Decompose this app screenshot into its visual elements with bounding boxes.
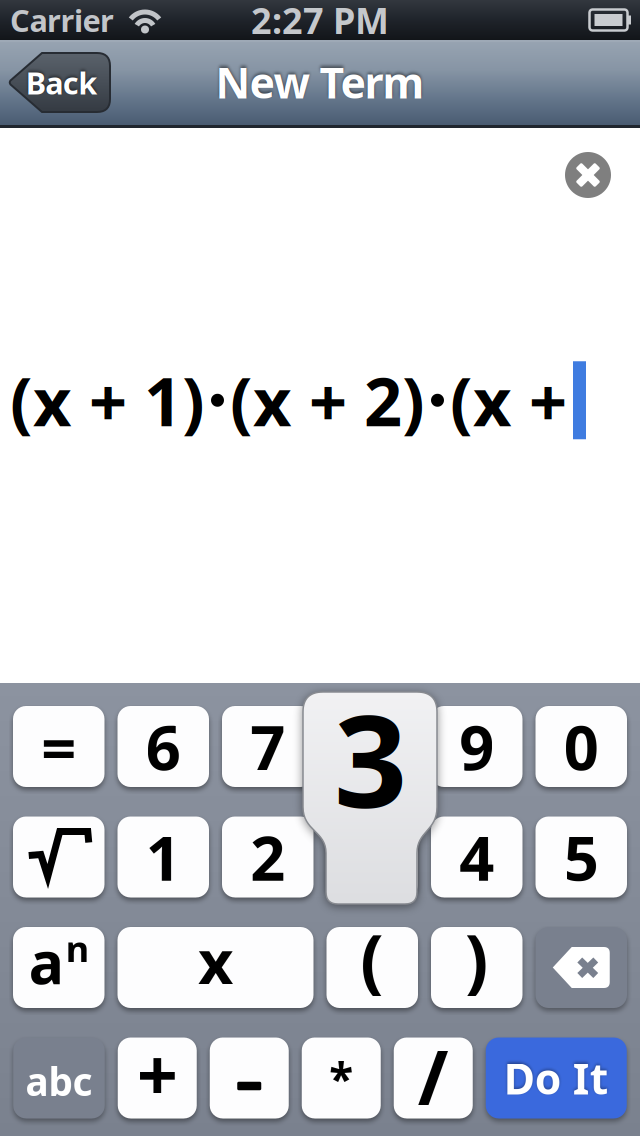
- button[interactable]: +: [118, 1037, 197, 1118]
- button[interactable]: 1: [117, 816, 209, 897]
- staticText: Do It: [504, 1050, 609, 1106]
- staticText: (x + 2): [230, 356, 425, 444]
- staticText: +: [137, 1025, 178, 1121]
- button[interactable]: [535, 927, 627, 1008]
- button[interactable]: /: [394, 1037, 473, 1118]
- staticText: a: [29, 922, 64, 1000]
- staticText: 1: [146, 816, 181, 898]
- button[interactable]: Do It: [486, 1037, 627, 1118]
- staticText: /: [418, 1026, 449, 1126]
- staticText: 6: [146, 706, 181, 787]
- staticText: 8: [355, 706, 390, 787]
- staticText: ): [465, 912, 489, 1005]
- staticText: x: [198, 920, 233, 1001]
- button[interactable]: ): [431, 927, 522, 1008]
- staticText: 4: [459, 816, 494, 898]
- staticText: 9: [459, 706, 494, 787]
- staticText: (x +: [450, 356, 567, 444]
- staticText: Carrier: [10, 0, 114, 40]
- staticText: n: [66, 925, 89, 972]
- button[interactable]: 6: [117, 706, 209, 787]
- staticText: Back: [26, 62, 97, 103]
- staticText: *: [329, 1049, 353, 1107]
- staticText: New Term: [215, 54, 424, 110]
- button[interactable]: 8: [326, 706, 418, 787]
- button[interactable]: 9: [431, 706, 522, 787]
- button[interactable]: 3: [326, 816, 418, 897]
- button[interactable]: x: [117, 927, 313, 1008]
- button[interactable]: (: [326, 927, 418, 1008]
- button[interactable]: 7: [222, 706, 313, 787]
- button[interactable]: 0: [535, 706, 627, 787]
- staticText: (x + 1): [10, 356, 205, 444]
- button[interactable]: a: [13, 927, 104, 1008]
- staticText: =: [41, 706, 76, 787]
- button[interactable]: =: [13, 706, 104, 787]
- button[interactable]: [565, 152, 611, 198]
- staticText: 7: [250, 706, 285, 787]
- staticText: 2: [250, 816, 285, 898]
- staticText: 0: [564, 706, 599, 787]
- button[interactable]: Back: [9, 53, 110, 112]
- staticText: abc: [25, 1055, 92, 1107]
- button[interactable]: *: [302, 1037, 381, 1118]
- button[interactable]: [13, 816, 104, 897]
- button[interactable]: 4: [431, 816, 522, 897]
- staticText: 3: [334, 673, 407, 843]
- button[interactable]: abc: [13, 1037, 105, 1118]
- button[interactable]: 5: [535, 816, 627, 897]
- staticText: 5: [564, 816, 599, 898]
- button[interactable]: [210, 1037, 289, 1118]
- staticText: (: [360, 912, 384, 1005]
- staticText: 2:27 PM: [251, 0, 389, 44]
- button[interactable]: 2: [222, 816, 313, 897]
